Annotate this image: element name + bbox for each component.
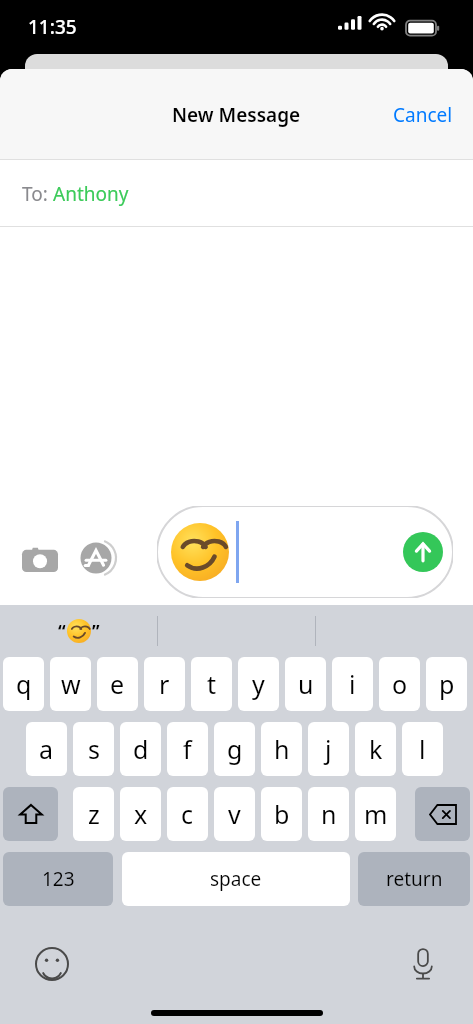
staticText: w bbox=[61, 667, 81, 701]
staticText: i bbox=[349, 667, 356, 701]
button[interactable]: q bbox=[3, 657, 44, 711]
staticText: j bbox=[325, 732, 332, 766]
staticText: To: bbox=[22, 181, 53, 207]
button[interactable]: b bbox=[261, 787, 302, 841]
button[interactable]: Shift bbox=[3, 787, 58, 841]
staticText: f bbox=[183, 732, 192, 766]
button[interactable]: e bbox=[97, 657, 138, 711]
button[interactable]: Apps bbox=[72, 532, 124, 584]
button[interactable]: z bbox=[73, 787, 114, 841]
staticText: l bbox=[419, 732, 426, 766]
staticText: t bbox=[207, 667, 217, 701]
staticText: New Message bbox=[172, 102, 301, 128]
button[interactable]: Dictation bbox=[399, 940, 447, 988]
staticText: a bbox=[39, 732, 54, 766]
staticText: k bbox=[369, 732, 383, 766]
button[interactable]: To: bbox=[0, 160, 473, 227]
staticText: z bbox=[88, 797, 100, 831]
button[interactable]: a bbox=[26, 722, 67, 776]
button[interactable]: space bbox=[122, 852, 350, 906]
button[interactable]: Camera bbox=[14, 532, 66, 584]
button[interactable]: o bbox=[379, 657, 420, 711]
staticText: q bbox=[16, 667, 32, 701]
button[interactable]: h bbox=[261, 722, 302, 776]
staticText: space bbox=[210, 866, 262, 892]
staticText: p bbox=[439, 667, 455, 701]
button[interactable]: y bbox=[238, 657, 279, 711]
staticText: 11:35 bbox=[28, 14, 77, 40]
staticText: h bbox=[274, 732, 290, 766]
button[interactable]: k bbox=[355, 722, 396, 776]
button[interactable]: i bbox=[332, 657, 373, 711]
button[interactable]: 123 bbox=[3, 852, 113, 906]
button[interactable]: p bbox=[426, 657, 467, 711]
staticText: d bbox=[133, 732, 149, 766]
button[interactable]: r bbox=[144, 657, 185, 711]
button[interactable]: s bbox=[73, 722, 114, 776]
button[interactable]: m bbox=[355, 787, 396, 841]
staticText: g bbox=[227, 732, 243, 766]
button[interactable]: n bbox=[308, 787, 349, 841]
button[interactable]: f bbox=[167, 722, 208, 776]
staticText: Cancel bbox=[393, 102, 453, 128]
button[interactable]: v bbox=[214, 787, 255, 841]
staticText: ” bbox=[92, 620, 100, 643]
button[interactable]: Backspace bbox=[415, 787, 470, 841]
staticText: Anthony bbox=[53, 181, 129, 207]
staticText: n bbox=[321, 797, 337, 831]
button[interactable]: w bbox=[50, 657, 91, 711]
staticText: r bbox=[159, 667, 170, 701]
button[interactable]: g bbox=[214, 722, 255, 776]
button[interactable]: j bbox=[308, 722, 349, 776]
staticText: e bbox=[110, 667, 125, 701]
button[interactable]: d bbox=[120, 722, 161, 776]
staticText: 123 bbox=[42, 866, 75, 892]
staticText: v bbox=[228, 797, 241, 831]
staticText: u bbox=[298, 667, 314, 701]
button[interactable]: t bbox=[191, 657, 232, 711]
button[interactable]: Send bbox=[403, 532, 443, 572]
button[interactable]: x bbox=[120, 787, 161, 841]
button[interactable]: c bbox=[167, 787, 208, 841]
staticText: x bbox=[134, 797, 148, 831]
button[interactable]: u bbox=[285, 657, 326, 711]
staticText: o bbox=[392, 667, 408, 701]
staticText: m bbox=[364, 797, 388, 831]
button[interactable]: Send bbox=[157, 506, 453, 598]
staticText: y bbox=[252, 667, 265, 701]
staticText: “ bbox=[58, 620, 66, 643]
staticText: c bbox=[181, 797, 194, 831]
staticText: return bbox=[386, 866, 443, 892]
staticText: s bbox=[88, 732, 100, 766]
button[interactable]: Cancel bbox=[373, 90, 473, 140]
button[interactable]: return bbox=[358, 852, 470, 906]
staticText: b bbox=[274, 797, 290, 831]
button[interactable]: l bbox=[402, 722, 443, 776]
button[interactable]: Emoji bbox=[28, 940, 76, 988]
